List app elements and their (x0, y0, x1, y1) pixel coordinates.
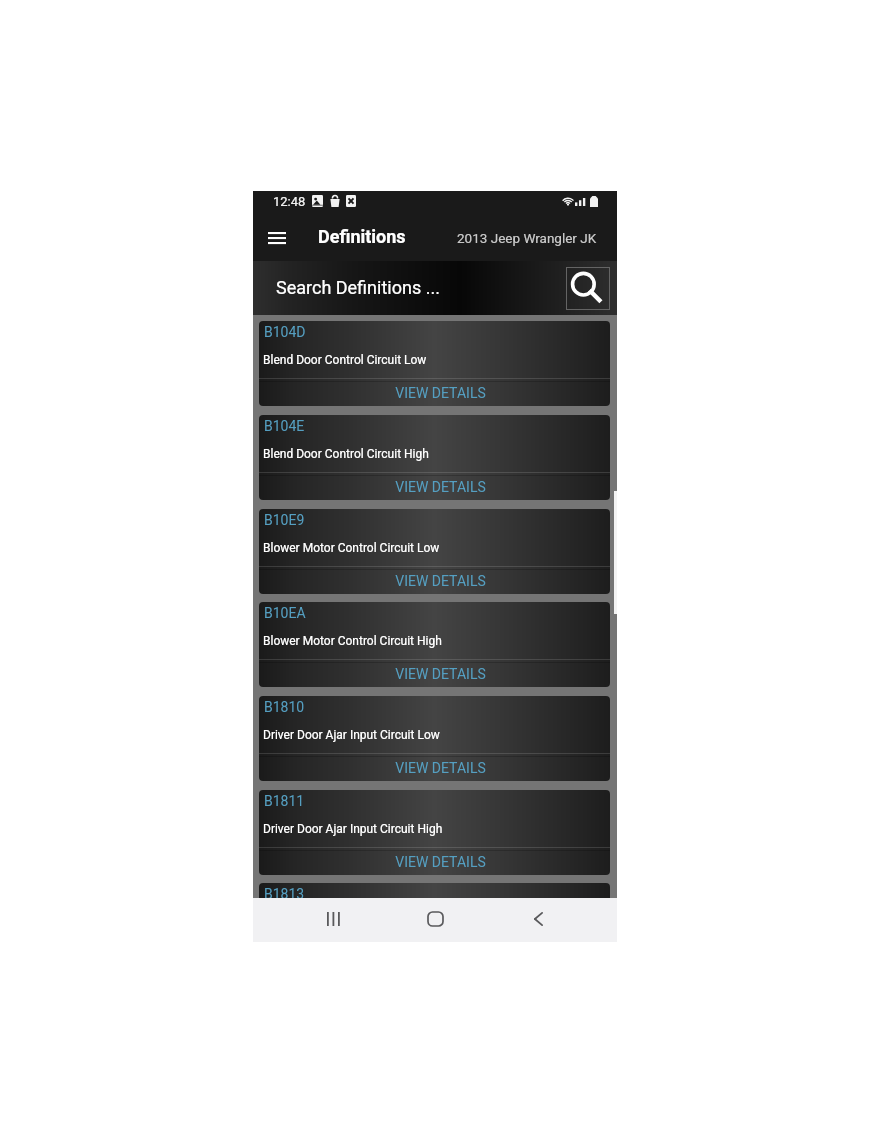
button[interactable]: B10EA (259, 602, 610, 687)
staticText: Blower Motor Control Circuit High (263, 634, 442, 648)
staticText: Blower Motor Control Circuit Low (263, 541, 440, 555)
button[interactable]: Search Definitions ... (276, 277, 440, 298)
staticText: Definitions (318, 226, 406, 247)
staticText: B1813 (264, 886, 305, 898)
staticText: Blend Door Control Circuit Low (263, 353, 427, 367)
button[interactable]: Home (413, 899, 458, 939)
staticText: 2013 Jeep Wrangler JK (457, 230, 597, 246)
staticText: 12:48 (273, 194, 306, 209)
staticText: B10E9 (264, 512, 305, 528)
button[interactable]: Open navigation menu (255, 218, 299, 258)
staticText: Driver Door Ajar Input Circuit Low (263, 728, 440, 742)
button[interactable]: B104E (259, 415, 610, 500)
staticText: Blend Door Control Circuit High (263, 447, 429, 461)
staticText: VIEW DETAILS (265, 385, 610, 401)
button[interactable]: B10E9 (259, 509, 610, 594)
staticText: B1810 (264, 699, 305, 715)
staticText: VIEW DETAILS (265, 760, 610, 776)
staticText: B104D (264, 324, 306, 340)
button[interactable]: B1813 (259, 883, 610, 898)
staticText: B10EA (264, 605, 306, 621)
button[interactable]: B1811 (259, 790, 610, 875)
button[interactable]: Back (516, 899, 561, 939)
staticText: VIEW DETAILS (265, 666, 610, 682)
staticText: VIEW DETAILS (265, 479, 610, 495)
button[interactable]: Search (566, 267, 610, 310)
staticText: B1811 (264, 793, 305, 809)
button[interactable]: B104D (259, 321, 610, 406)
staticText: B104E (264, 418, 305, 434)
button[interactable]: B1810 (259, 696, 610, 781)
staticText: Driver Door Ajar Input Circuit High (263, 822, 443, 836)
staticText: VIEW DETAILS (265, 573, 610, 589)
staticText: VIEW DETAILS (265, 854, 610, 870)
button[interactable]: Recent apps (311, 899, 356, 939)
